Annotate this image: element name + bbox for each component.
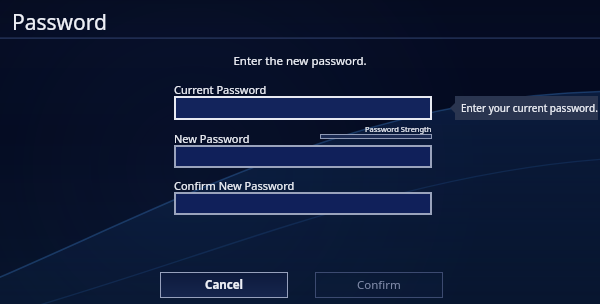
staticText: Password Strength: [365, 124, 432, 134]
staticText: Password: [12, 8, 107, 37]
staticText: Confirm: [357, 277, 401, 293]
staticText: Confirm New Password: [174, 178, 295, 193]
staticText: New Password: [174, 131, 250, 146]
staticText: Enter your current password.: [461, 101, 598, 115]
button[interactable]: [174, 192, 432, 215]
staticText: Enter the new password.: [233, 53, 367, 69]
button[interactable]: Confirm: [315, 272, 443, 298]
button[interactable]: Cancel: [160, 272, 288, 298]
staticText: Cancel: [205, 277, 243, 293]
button[interactable]: [174, 96, 432, 120]
staticText: Current Password: [174, 82, 267, 97]
button[interactable]: [174, 145, 432, 168]
